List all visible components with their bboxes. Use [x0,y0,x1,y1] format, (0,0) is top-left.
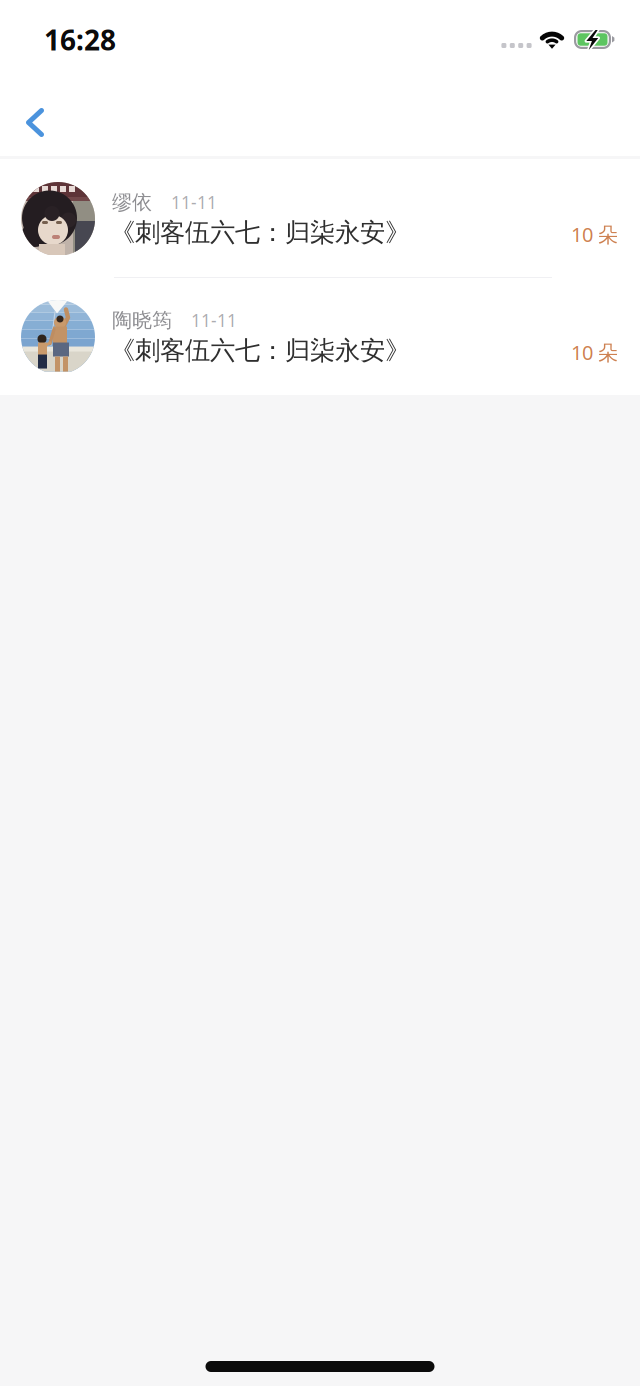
staticText: 11-11 [171,191,217,214]
staticText: 《刺客伍六七：归柒永安》 [110,335,410,366]
staticText: 10 朵 [571,221,618,248]
button[interactable]: Back [0,78,76,156]
staticText: 《刺客伍六七：归柒永安》 [110,217,410,248]
staticText: 16:28 [44,21,116,58]
button[interactable]: 缪依 [0,159,640,277]
staticText: 10 朵 [571,339,618,366]
staticText: 陶晓筠 [112,308,172,333]
staticText: 11-11 [191,309,237,332]
button[interactable]: 陶晓筠 [0,277,640,395]
staticText: 缪依 [112,190,152,215]
